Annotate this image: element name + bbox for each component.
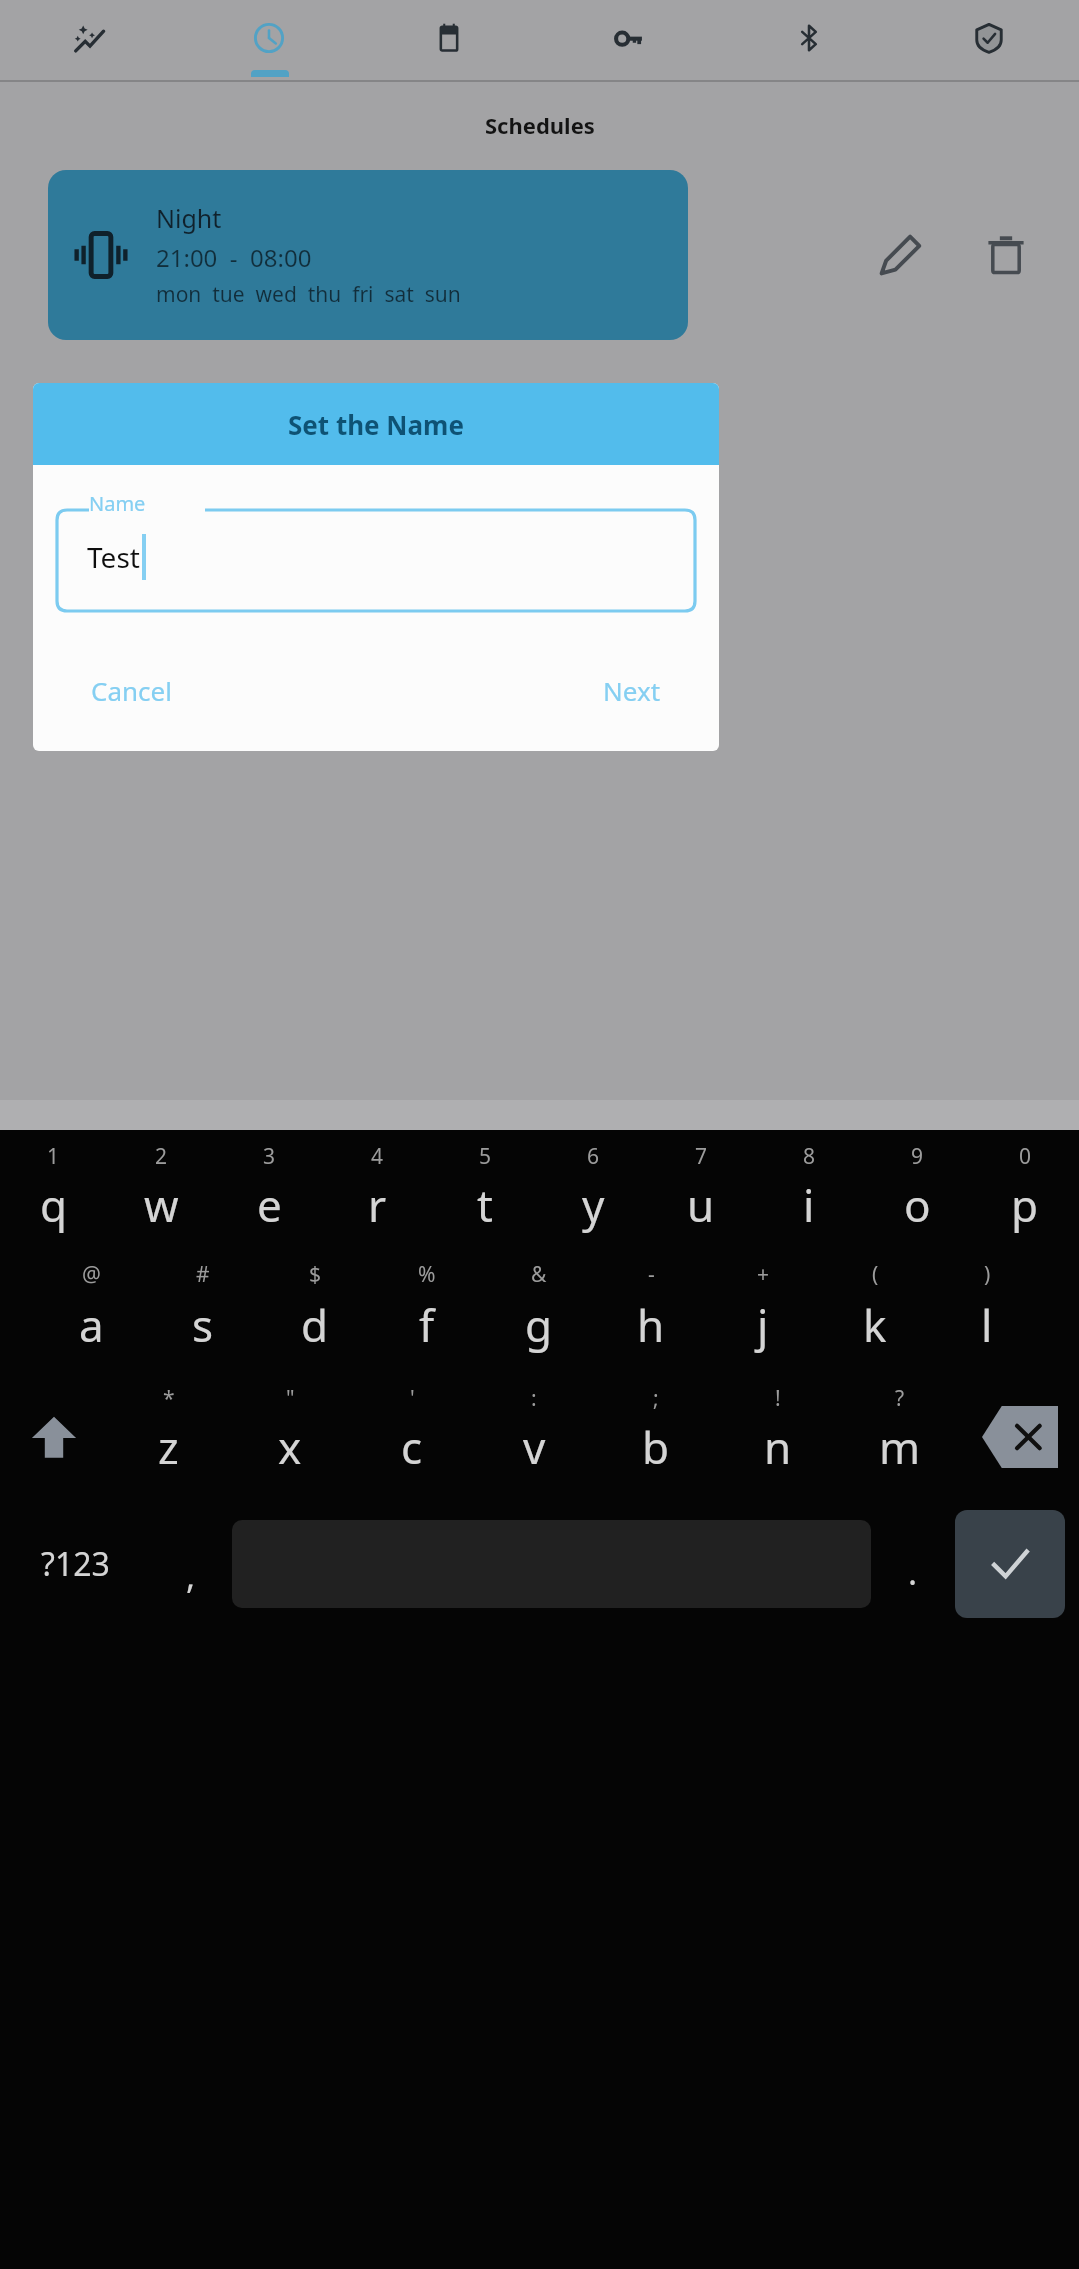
staticText: 1 <box>47 1142 60 1171</box>
staticText: d <box>301 1295 329 1355</box>
button[interactable]: 1 <box>0 1136 107 1254</box>
button[interactable]: ' <box>351 1376 473 1498</box>
button[interactable]: ! <box>717 1376 839 1498</box>
staticText: u <box>687 1175 715 1235</box>
staticText: t <box>477 1175 493 1235</box>
button[interactable]: 7 <box>647 1136 755 1254</box>
staticText: - <box>648 1260 655 1289</box>
staticText: l <box>981 1295 993 1355</box>
button[interactable]: ( <box>819 1254 931 1376</box>
staticText: * <box>163 1384 175 1413</box>
button[interactable]: Schedules <box>179 6 359 70</box>
button[interactable]: Unlock <box>539 6 719 70</box>
button[interactable]: $ <box>259 1254 371 1376</box>
staticText: j <box>757 1295 769 1355</box>
staticText: $ <box>309 1260 322 1289</box>
button[interactable]: # <box>147 1254 259 1376</box>
staticText: 3 <box>263 1142 276 1171</box>
staticText: & <box>531 1260 547 1289</box>
button[interactable]: Delete <box>963 212 1049 298</box>
staticText: ? <box>895 1384 905 1413</box>
button[interactable]: % <box>371 1254 483 1376</box>
staticText: 8 <box>803 1142 816 1171</box>
button[interactable]: @ <box>36 1254 147 1376</box>
staticText: ) <box>984 1260 991 1289</box>
staticText: c <box>401 1417 423 1477</box>
staticText: . <box>908 1549 918 1595</box>
staticText: r <box>368 1175 387 1235</box>
staticText: n <box>764 1417 792 1477</box>
staticText: g <box>525 1295 553 1355</box>
button[interactable]: + <box>707 1254 819 1376</box>
button[interactable]: : <box>473 1376 595 1498</box>
staticText: Set the Name <box>288 407 464 442</box>
staticText: h <box>637 1295 665 1355</box>
staticText: Night <box>156 201 222 235</box>
staticText: mon tue wed thu fri sat sun <box>156 280 461 309</box>
button[interactable]: Effects <box>0 6 179 70</box>
button[interactable]: , <box>150 1498 232 1630</box>
button[interactable]: * <box>108 1376 229 1498</box>
button[interactable]: . <box>871 1498 955 1630</box>
staticText: w <box>144 1175 179 1235</box>
button[interactable]: 9 <box>863 1136 971 1254</box>
staticText: : <box>531 1384 537 1413</box>
button[interactable]: Done <box>955 1510 1065 1618</box>
staticText: z <box>158 1417 179 1477</box>
button[interactable]: Calendar <box>359 6 539 70</box>
button[interactable]: Cancel <box>77 665 186 716</box>
staticText: s <box>192 1295 214 1355</box>
staticText: a <box>79 1295 104 1355</box>
button[interactable]: ?123 <box>0 1498 150 1630</box>
staticText: i <box>803 1175 815 1235</box>
staticText: o <box>904 1175 931 1235</box>
button[interactable]: 3 <box>215 1136 323 1254</box>
button[interactable]: 4 <box>323 1136 431 1254</box>
button[interactable]: Backspace <box>961 1376 1079 1498</box>
button[interactable]: 5 <box>431 1136 539 1254</box>
staticText: ; <box>653 1384 659 1413</box>
staticText: Schedules <box>485 110 595 140</box>
staticText: 2 <box>155 1142 168 1171</box>
button[interactable]: & <box>483 1254 595 1376</box>
staticText: 21:00 - 08:00 <box>156 241 312 274</box>
button[interactable]: ) <box>931 1254 1043 1376</box>
staticText: + <box>757 1260 770 1289</box>
button[interactable]: Bluetooth <box>719 6 899 70</box>
button[interactable]: ? <box>839 1376 961 1498</box>
button[interactable]: Night <box>48 170 688 340</box>
staticText: , <box>186 1553 196 1599</box>
button[interactable]: 8 <box>755 1136 863 1254</box>
button[interactable]: 2 <box>107 1136 215 1254</box>
staticText: f <box>419 1295 435 1355</box>
button[interactable]: 0 <box>971 1136 1079 1254</box>
staticText: b <box>642 1417 670 1477</box>
button[interactable]: Edit <box>857 212 943 298</box>
staticText: 5 <box>479 1142 492 1171</box>
staticText: e <box>257 1175 282 1235</box>
button[interactable]: Next <box>589 665 675 716</box>
staticText: ?123 <box>41 1542 110 1586</box>
button[interactable]: Protection <box>899 6 1079 70</box>
staticText: ! <box>775 1384 781 1413</box>
button[interactable]: 6 <box>539 1136 647 1254</box>
staticText: Name <box>89 490 146 517</box>
button[interactable]: Shift <box>0 1376 108 1498</box>
staticText: 6 <box>587 1142 600 1171</box>
button[interactable]: " <box>229 1376 351 1498</box>
staticText: Test <box>87 538 140 576</box>
staticText: Cancel <box>91 673 172 708</box>
staticText: % <box>418 1260 436 1289</box>
button[interactable]: ; <box>595 1376 717 1498</box>
staticText: " <box>286 1384 295 1413</box>
staticText: ( <box>872 1260 879 1289</box>
staticText: ' <box>410 1384 415 1413</box>
staticText: 9 <box>911 1142 924 1171</box>
staticText: k <box>863 1295 887 1355</box>
staticText: # <box>196 1260 210 1289</box>
button[interactable]: - <box>595 1254 707 1376</box>
